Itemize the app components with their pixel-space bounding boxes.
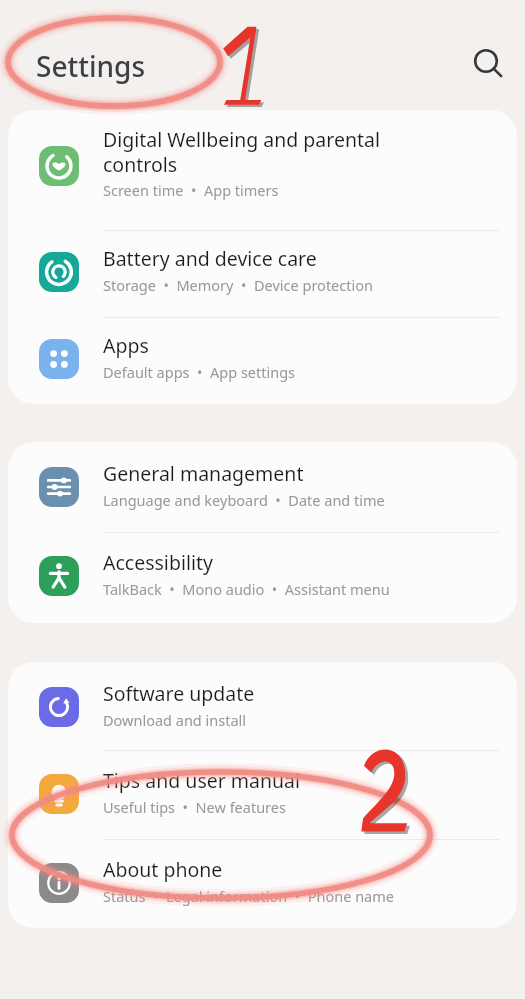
button[interactable]: Search [464, 39, 512, 87]
staticText: Storage • Memory • Device protection [103, 275, 373, 295]
staticText: TalkBack • Mono audio • Assistant menu [103, 579, 390, 599]
button[interactable]: Battery and device care [8, 231, 517, 317]
button[interactable]: Accessibility [8, 533, 517, 623]
staticText: Battery and device care [103, 245, 503, 272]
staticText: Default apps • App settings [103, 362, 296, 382]
staticText: Tips and user manual [103, 767, 503, 794]
button[interactable]: General management [8, 442, 517, 532]
staticText: Status • Legal information • Phone name [103, 886, 394, 906]
button[interactable]: Apps [8, 318, 517, 404]
staticText: Language and keyboard • Date and time [103, 490, 385, 510]
staticText: Settings [36, 47, 146, 85]
button[interactable]: About phone [8, 840, 517, 928]
staticText: Download and install [103, 710, 247, 730]
staticText: Software update [103, 680, 503, 707]
button[interactable]: Tips and user manual [8, 751, 517, 839]
staticText: General management [103, 460, 503, 487]
staticText: Apps [103, 332, 503, 359]
button[interactable]: Digital Wellbeing and parental controls [8, 110, 517, 230]
button[interactable]: Software update [8, 662, 517, 750]
staticText: Screen time • App timers [103, 180, 279, 200]
staticText: Digital Wellbeing and parental controls [103, 126, 463, 177]
staticText: About phone [103, 856, 503, 883]
staticText: Accessibility [103, 549, 503, 576]
staticText: Useful tips • New features [103, 797, 286, 817]
